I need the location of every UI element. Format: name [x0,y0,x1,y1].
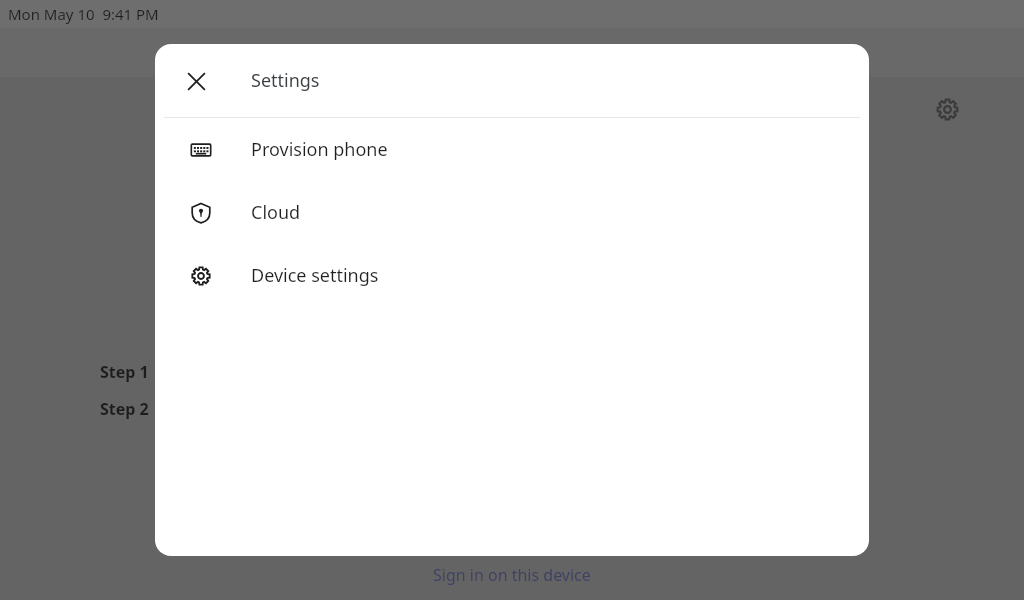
button[interactable]: Sign in on this device [0,550,1024,600]
staticText: Settings [251,68,320,93]
staticText: Provision phone [251,137,388,162]
button[interactable]: Provision phone [155,118,869,181]
staticText: Sign in on this device [433,564,591,586]
staticText: Mon May 10 9:41 PM [8,4,159,24]
staticText: Step 1 [100,361,149,383]
button[interactable]: Close [174,59,218,103]
staticText: Cloud [251,200,301,225]
button[interactable]: Settings [925,87,969,131]
button[interactable]: Device settings [155,244,869,307]
staticText: Device settings [251,263,379,288]
staticText: Step 2 [100,398,149,420]
button[interactable]: Cloud [155,181,869,244]
